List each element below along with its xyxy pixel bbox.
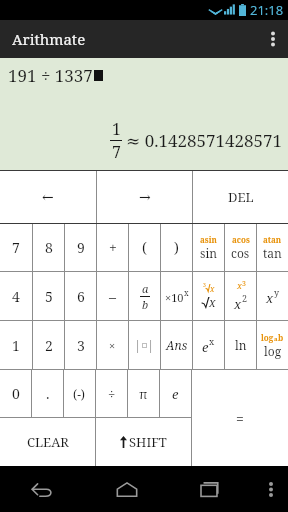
button[interactable]: 9 xyxy=(65,224,96,271)
staticText: ) xyxy=(174,238,179,257)
button[interactable]: × xyxy=(97,321,128,369)
button[interactable]: acos xyxy=(225,224,256,271)
staticText: cos xyxy=(231,245,250,261)
button[interactable]: More options xyxy=(258,20,288,58)
button[interactable]: 3 xyxy=(65,321,96,369)
staticText: 8 xyxy=(45,238,53,257)
staticText: . xyxy=(46,384,50,403)
button[interactable]: ÷ xyxy=(96,370,127,417)
button[interactable]: e xyxy=(160,370,191,417)
button[interactable]: 0 xyxy=(0,370,31,417)
staticText: sin xyxy=(200,245,217,261)
button[interactable]: x xyxy=(225,272,256,320)
staticText: 9 xyxy=(77,238,85,257)
button[interactable]: Left xyxy=(0,171,96,223)
staticText: 3 xyxy=(242,279,246,289)
staticText: log xyxy=(261,332,274,343)
staticText: 2 xyxy=(45,336,53,355)
staticText: 2 xyxy=(242,292,248,304)
button[interactable]: a xyxy=(129,272,160,320)
staticText: log xyxy=(264,343,282,359)
button[interactable]: | xyxy=(129,321,160,369)
button[interactable]: = xyxy=(192,370,288,466)
staticText: b xyxy=(278,332,284,343)
button[interactable]: 4 xyxy=(0,272,32,320)
staticText: 0 xyxy=(12,384,20,403)
button[interactable]: SHIFT xyxy=(96,418,191,466)
button[interactable]: 6 xyxy=(65,272,96,320)
staticText: 21:18 xyxy=(250,1,284,19)
button[interactable]: . xyxy=(32,370,63,417)
staticText: a xyxy=(274,335,278,343)
staticText: tan xyxy=(263,245,282,261)
staticText: x xyxy=(237,279,242,291)
staticText: = xyxy=(236,409,244,428)
staticText: e xyxy=(172,385,179,403)
staticText: atan xyxy=(263,234,282,245)
staticText: 3 xyxy=(77,336,85,355)
button[interactable]: x xyxy=(257,272,288,320)
staticText: 7 xyxy=(12,238,20,257)
button[interactable]: + xyxy=(97,224,128,271)
button[interactable]: Ans xyxy=(161,321,192,369)
staticText: b xyxy=(142,297,149,312)
staticText: Arithmate xyxy=(12,29,86,49)
button[interactable]: DEL xyxy=(193,171,288,223)
staticText: ÷ xyxy=(108,385,116,403)
staticText: + xyxy=(109,238,117,257)
staticText: SHIFT xyxy=(129,433,167,451)
staticText: | xyxy=(147,336,155,354)
staticText: Ans xyxy=(166,337,188,353)
button[interactable]: Right xyxy=(97,171,192,223)
staticText: 4 xyxy=(12,287,20,306)
button[interactable]: 2 xyxy=(33,321,64,369)
button[interactable]: 7 xyxy=(0,224,32,271)
staticText: ( xyxy=(142,238,147,257)
button[interactable]: CLEAR xyxy=(0,418,95,466)
staticText: | xyxy=(134,336,142,354)
staticText: e xyxy=(202,338,209,356)
staticText: – xyxy=(109,287,116,306)
staticText: x xyxy=(234,295,242,313)
staticText: CLEAR xyxy=(27,433,69,451)
button[interactable]: Menu xyxy=(254,466,288,512)
staticText: (-) xyxy=(73,386,86,402)
button[interactable]: log xyxy=(257,321,288,369)
staticText: 3 xyxy=(203,282,206,289)
staticText: x xyxy=(266,289,274,307)
button[interactable]: e xyxy=(193,321,224,369)
button[interactable]: ( xyxy=(129,224,160,271)
button[interactable]: – xyxy=(97,272,128,320)
button[interactable]: (-) xyxy=(64,370,95,417)
staticText: 1 xyxy=(112,118,121,140)
staticText: DEL xyxy=(228,188,254,206)
staticText: x xyxy=(209,335,215,347)
button[interactable]: ) xyxy=(161,224,192,271)
button[interactable]: Home xyxy=(84,466,169,512)
button[interactable]: atan xyxy=(257,224,288,271)
button[interactable]: ×10 xyxy=(161,272,192,320)
staticText: ≈ 0.1428571428571 xyxy=(126,129,282,152)
staticText: x xyxy=(210,283,215,294)
button[interactable]: Back xyxy=(0,466,84,512)
staticText: y xyxy=(274,286,280,298)
staticText: 6 xyxy=(77,287,85,306)
button[interactable]: π xyxy=(128,370,159,417)
staticText: x xyxy=(209,294,216,310)
button[interactable]: Recent apps xyxy=(169,466,254,512)
staticText: a xyxy=(142,281,149,296)
button[interactable]: asin xyxy=(193,224,224,271)
staticText: 5 xyxy=(45,287,53,306)
staticText: ln xyxy=(235,337,247,353)
staticText: x xyxy=(184,287,189,298)
staticText: 191 ÷ 1337 xyxy=(8,64,93,87)
staticText: ← xyxy=(42,189,54,205)
button[interactable]: 3 xyxy=(193,272,224,320)
button[interactable]: 1 xyxy=(0,321,32,369)
staticText: π xyxy=(139,385,148,403)
staticText: × xyxy=(109,338,116,353)
button[interactable]: 8 xyxy=(33,224,64,271)
staticText: asin xyxy=(200,234,217,245)
button[interactable]: 5 xyxy=(33,272,64,320)
button[interactable]: ln xyxy=(225,321,256,369)
